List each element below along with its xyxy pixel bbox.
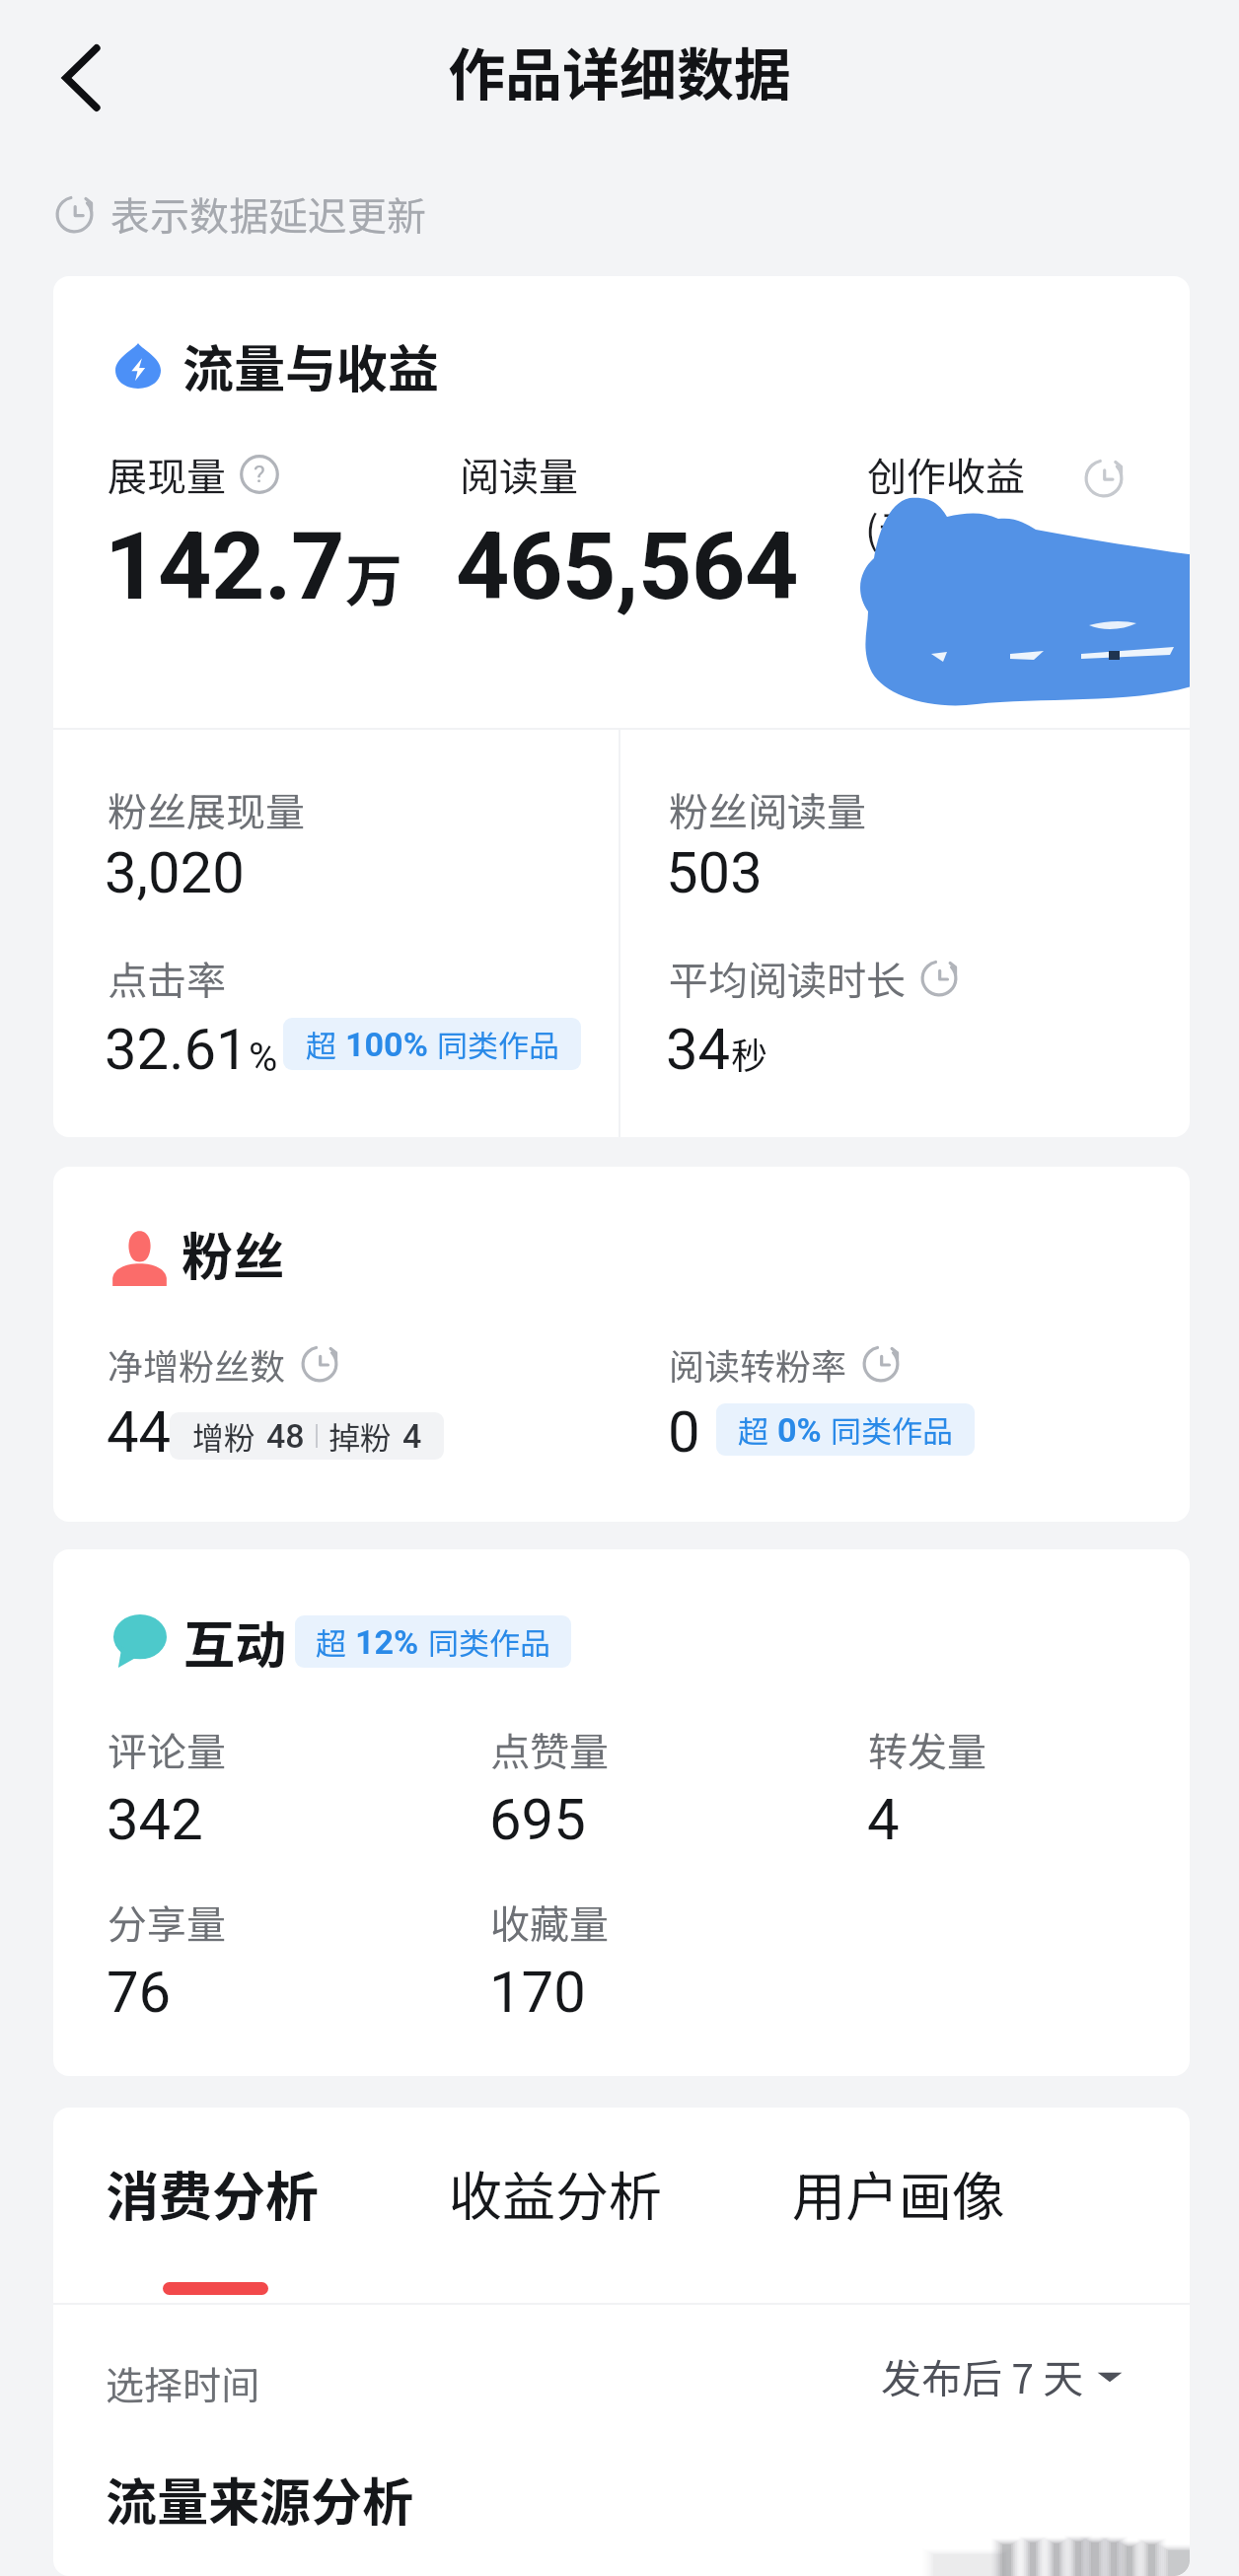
staticText: 收藏量 — [490, 1894, 609, 1951]
staticText: 0 — [668, 1398, 700, 1466]
staticText: 粉丝阅读量 — [669, 781, 866, 838]
staticText: 评论量 — [108, 1721, 226, 1778]
staticText: 万 — [345, 536, 403, 618]
staticText: ? — [254, 460, 265, 488]
button[interactable]: 用户画像 — [792, 2154, 1005, 2231]
staticText: 同类作品 — [428, 1619, 550, 1664]
staticText: 170 — [489, 1959, 586, 2026]
staticText: 12% — [355, 1622, 419, 1662]
staticText: (元) — [865, 499, 932, 556]
staticText: 消费分析 — [106, 2154, 319, 2231]
button[interactable]: 收益分析 — [449, 2154, 662, 2231]
staticText: 342 — [107, 1786, 203, 1853]
button[interactable]: 展现量 — [108, 446, 279, 503]
staticText: % — [249, 1035, 278, 1081]
staticText: 142.7 — [105, 512, 345, 621]
staticText: 用户画像 — [792, 2154, 1005, 2231]
button[interactable]: Back — [48, 40, 123, 115]
staticText: 34 — [666, 1016, 731, 1083]
staticText: 3,020 — [105, 839, 245, 906]
staticText: 48 — [266, 1416, 305, 1456]
staticText: 作品详细数据 — [448, 30, 792, 112]
staticText: 阅读转粉率 — [669, 1338, 847, 1390]
staticText: 互动 — [183, 1605, 287, 1679]
button[interactable]: What is impressions — [240, 455, 279, 494]
button[interactable]: 表示数据延迟更新 — [54, 185, 426, 243]
staticText: 选择时间 — [106, 2355, 260, 2410]
staticText: 增粉 — [192, 1413, 256, 1459]
staticText: 4 — [867, 1786, 900, 1853]
staticText: 695 — [489, 1786, 586, 1853]
staticText: 0% — [777, 1410, 822, 1450]
staticText: 创作收益 — [867, 446, 1025, 503]
button[interactable]: 发布后 7 天 — [881, 2346, 1124, 2404]
button[interactable]: 消费分析 — [106, 2154, 319, 2231]
staticText: 发布后 7 天 — [881, 2346, 1084, 2404]
staticText: 100% — [345, 1025, 428, 1064]
staticText: 同类作品 — [831, 1407, 953, 1452]
staticText: 粉丝 — [182, 1216, 285, 1290]
staticText: 阅读量 — [460, 446, 578, 503]
staticText: 76 — [107, 1959, 172, 2026]
staticText: 超 — [738, 1407, 768, 1452]
staticText: 流量与收益 — [182, 328, 440, 402]
staticText: 超 — [306, 1022, 336, 1066]
staticText: 32.61 — [105, 1016, 249, 1083]
staticText: 44 — [107, 1398, 172, 1466]
staticText: 掉粉 — [328, 1413, 393, 1459]
staticText: 超 — [316, 1619, 346, 1664]
staticText: 点击率 — [108, 950, 226, 1007]
staticText: 465,564 — [456, 512, 798, 621]
staticText: 转发量 — [868, 1721, 986, 1778]
staticText: 粉丝展现量 — [108, 781, 305, 838]
staticText: 分享量 — [108, 1894, 226, 1951]
staticText: 流量来源分析 — [106, 2462, 414, 2536]
staticText: 展现量 — [108, 446, 226, 503]
staticText: 收益分析 — [449, 2154, 662, 2231]
staticText: 净增粉丝数 — [108, 1338, 286, 1390]
staticText: 秒 — [731, 1027, 767, 1080]
staticText: 503 — [666, 839, 763, 906]
staticText: 表示数据延迟更新 — [110, 185, 426, 243]
staticText: 4 — [402, 1416, 422, 1456]
staticText: 平均阅读时长 — [669, 950, 906, 1007]
staticText: 点赞量 — [490, 1721, 609, 1778]
staticText: 同类作品 — [437, 1022, 559, 1066]
